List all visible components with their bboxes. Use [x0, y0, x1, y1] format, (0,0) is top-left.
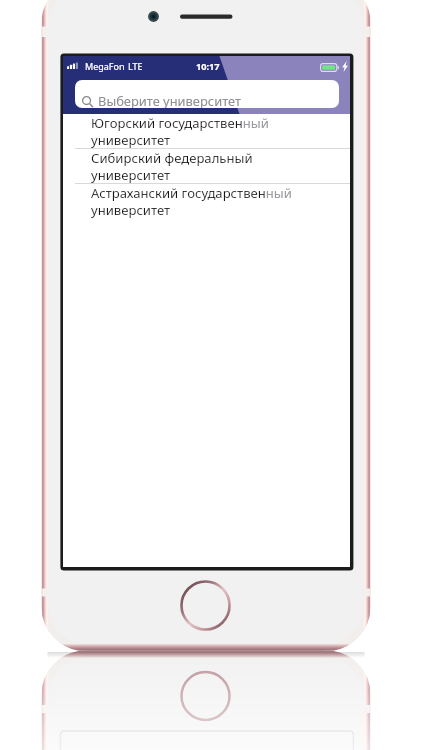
button[interactable]: Астраханский государственный университет [63, 184, 350, 218]
staticText: Югорский государственный университет [91, 114, 269, 148]
staticText: MegaFon [85, 60, 125, 72]
staticText: Выберите университет [98, 92, 242, 108]
staticText: LTE [128, 60, 143, 72]
button[interactable]: Выберите университет [75, 80, 339, 108]
button[interactable]: Сибирский федеральный университет [63, 149, 350, 183]
staticText: 10:17 [196, 60, 220, 73]
staticText: Сибирский федеральный университет [91, 149, 253, 183]
button[interactable]: Югорский государственный университет [63, 114, 350, 148]
staticText: Астраханский государственный университет [91, 184, 292, 218]
